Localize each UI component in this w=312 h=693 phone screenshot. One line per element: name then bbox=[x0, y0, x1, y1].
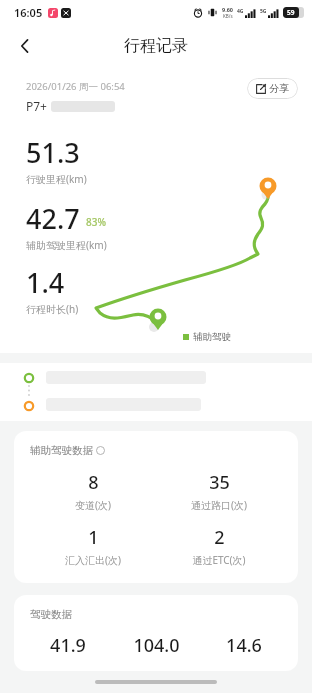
staticText: 4G bbox=[237, 8, 244, 15]
button[interactable]: 分享 bbox=[247, 78, 298, 99]
staticText: 59 bbox=[287, 8, 295, 17]
staticText: 汇入汇出(次) bbox=[65, 553, 121, 567]
staticText: 16:05 bbox=[14, 5, 43, 20]
staticText: 通过路口(次) bbox=[191, 498, 247, 512]
staticText: KB/s bbox=[223, 13, 233, 19]
staticText: 14.6 bbox=[226, 633, 262, 655]
staticText: 辅助驾驶 bbox=[193, 331, 231, 343]
staticText: 辅助驾驶数据 bbox=[30, 444, 93, 457]
staticText: 5G bbox=[260, 8, 267, 15]
staticText: 通过ETC(次) bbox=[192, 553, 246, 567]
staticText: 1.4 bbox=[26, 264, 65, 301]
staticText: 41.9 bbox=[50, 633, 86, 655]
staticText: 行驶里程(km) bbox=[26, 172, 87, 186]
staticText: 104.0 bbox=[133, 633, 180, 655]
staticText: 行程时长(h) bbox=[26, 302, 79, 316]
staticText: 42.7 bbox=[26, 200, 80, 237]
staticText: 35 bbox=[209, 470, 230, 495]
staticText: 2026/01/26 周一 06:54 bbox=[26, 80, 125, 93]
staticText: P7+ bbox=[26, 98, 47, 114]
staticText: 行程记录 bbox=[124, 36, 188, 56]
staticText: 驾驶数据 bbox=[30, 608, 72, 621]
staticText: 9.60 bbox=[222, 6, 233, 13]
staticText: 分享 bbox=[269, 82, 289, 95]
button[interactable]: Back bbox=[6, 27, 44, 65]
button[interactable]: Info bbox=[96, 446, 105, 455]
staticText: 8 bbox=[88, 470, 99, 495]
staticText: 辅助驾驶里程(km) bbox=[26, 238, 107, 252]
staticText: 变道(次) bbox=[75, 498, 111, 512]
staticText: 2 bbox=[214, 525, 225, 550]
staticText: 51.3 bbox=[26, 134, 80, 171]
staticText: 1 bbox=[88, 525, 99, 550]
staticText: 83% bbox=[86, 215, 106, 229]
